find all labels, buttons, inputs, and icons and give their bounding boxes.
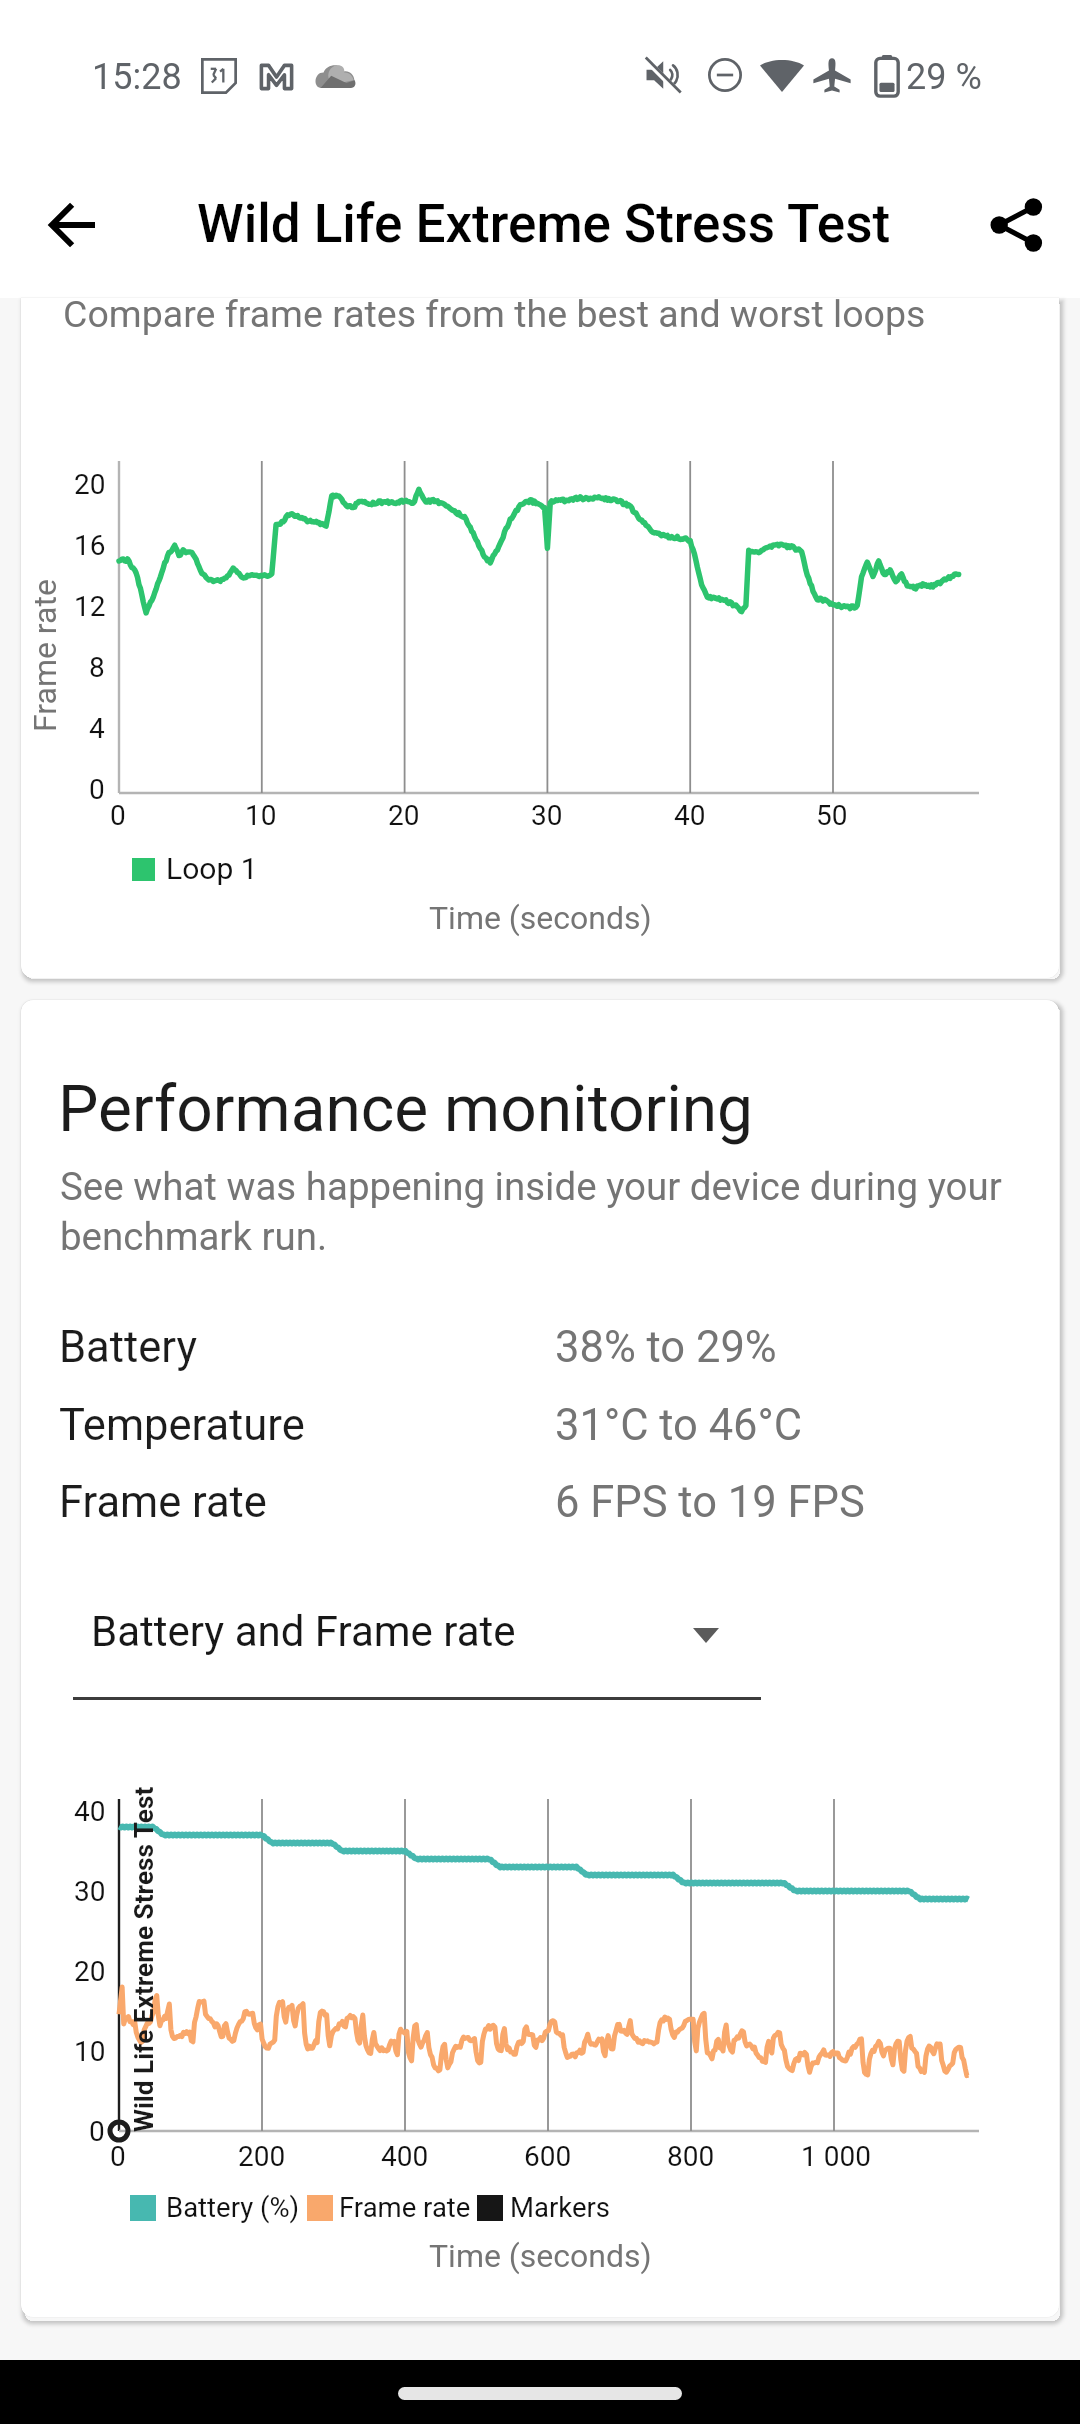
staticText: 8 — [89, 651, 105, 684]
staticText: 30 — [531, 799, 563, 832]
staticText: 4 — [89, 712, 105, 745]
staticText: 0 — [89, 773, 105, 806]
staticText: Temperature — [59, 1400, 305, 1451]
staticText: 40 — [74, 1795, 106, 1828]
staticText: 600 — [524, 2140, 572, 2173]
staticText: 0 — [110, 2140, 126, 2173]
staticText: 200 — [238, 2140, 286, 2173]
staticText: 20 — [74, 1955, 106, 1988]
staticText: Performance monitoring — [58, 1072, 753, 1147]
staticText: Frame rate — [59, 1477, 267, 1528]
staticText: 50 — [816, 799, 848, 832]
staticText: 20 — [388, 799, 420, 832]
staticText: Time (seconds) — [429, 2237, 652, 2275]
staticText: Compare frame rates from the best and wo… — [63, 298, 926, 336]
staticText: 38% to 29% — [555, 1322, 777, 1373]
staticText: 30 — [74, 1875, 106, 1908]
button[interactable]: Share — [956, 165, 1076, 285]
staticText: Battery and Frame rate — [91, 1607, 516, 1656]
staticText: See what was happening inside your devic… — [60, 1164, 1010, 1260]
staticText: 800 — [667, 2140, 715, 2173]
staticText: Markers — [510, 2191, 611, 2223]
staticText: 12 — [74, 590, 106, 623]
staticText: 10 — [74, 2035, 106, 2068]
staticText: 29 % — [906, 56, 982, 98]
staticText: 10 — [245, 799, 277, 832]
button[interactable]: Back — [13, 165, 133, 285]
staticText: 15:28 — [92, 56, 182, 98]
staticText: Frame rate — [339, 2191, 471, 2223]
staticText: 16 — [74, 529, 106, 562]
staticText: Wild Life Extreme Stress Test — [197, 193, 891, 255]
staticText: 6 FPS to 19 FPS — [555, 1477, 865, 1528]
staticText: 400 — [381, 2140, 429, 2173]
staticText: Time (seconds) — [429, 899, 652, 937]
staticText: Battery (%) — [166, 2191, 300, 2223]
staticText: 20 — [74, 468, 106, 501]
staticText: Frame rate — [26, 579, 64, 732]
staticText: Loop 1 — [166, 851, 258, 886]
staticText: Battery — [59, 1322, 197, 1373]
staticText: 0 — [89, 2115, 105, 2148]
staticText: 31°C to 46°C — [555, 1400, 803, 1451]
staticText: 40 — [674, 799, 706, 832]
staticText: 0 — [110, 799, 126, 832]
staticText: Wild Life Extreme Stress Test — [129, 1786, 160, 2132]
button[interactable]: Battery and Frame rate — [73, 1590, 761, 1700]
staticText: 1 000 — [801, 2140, 871, 2173]
